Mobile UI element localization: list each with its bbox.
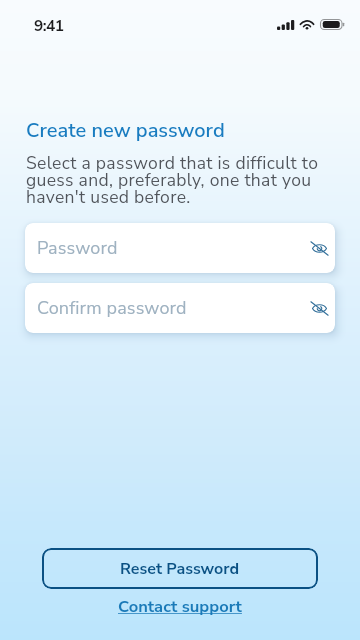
staticText: Create new password (26, 117, 225, 144)
staticText: Confirm password (37, 296, 187, 321)
button[interactable]: Contact support (112, 593, 248, 620)
button[interactable]: Confirm password (25, 283, 335, 333)
button[interactable]: Show password (306, 235, 332, 261)
button[interactable]: Reset Password (42, 548, 318, 589)
button[interactable]: Password (25, 223, 335, 273)
staticText: 9:41 (34, 15, 64, 36)
button[interactable]: Show password (306, 295, 332, 321)
staticText: Contact support (118, 595, 242, 618)
staticText: Reset Password (120, 558, 240, 580)
staticText: Select a password that is difficult to g… (26, 151, 335, 209)
staticText: Password (37, 236, 118, 261)
